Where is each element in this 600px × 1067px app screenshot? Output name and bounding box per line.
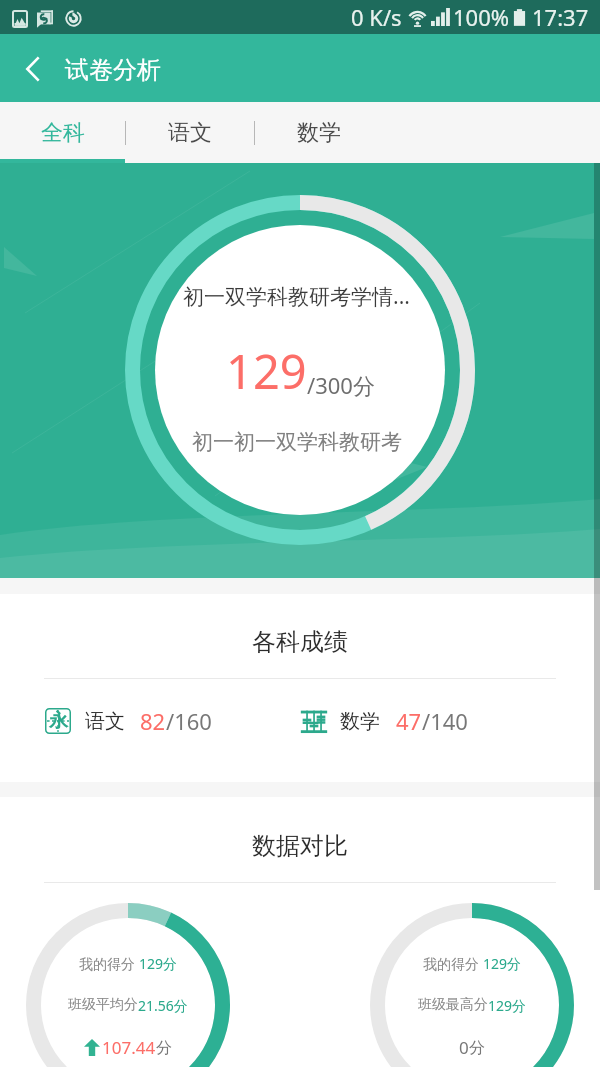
button[interactable]: Back (0, 34, 62, 102)
staticText: /140 (422, 706, 468, 736)
staticText: 82 (140, 706, 166, 736)
staticText: 129分 (483, 954, 522, 973)
staticText: /300分 (307, 370, 375, 400)
staticText: /160 (166, 706, 212, 736)
button[interactable]: 全科 (0, 102, 125, 163)
staticText: 试卷分析 (65, 55, 161, 85)
staticText: 数学 (297, 119, 341, 147)
staticText: 初一初一双学科教研考 (192, 429, 402, 455)
staticText: 初一双学科教研考学情... (183, 282, 410, 311)
staticText: 47 (396, 706, 422, 736)
staticText: 0 K/s (351, 2, 402, 32)
staticText: 0 (459, 1036, 469, 1059)
staticText: 分 (156, 1038, 172, 1058)
staticText: 班级最高分 (418, 996, 488, 1014)
staticText: 永 (49, 709, 68, 733)
staticText: 数据对比 (252, 831, 348, 861)
staticText: 129分 (139, 954, 178, 973)
staticText: 我的得分 (79, 954, 139, 973)
staticText: 17:37 (532, 2, 589, 32)
staticText: 全科 (41, 119, 85, 147)
staticText: 数学 (340, 709, 380, 734)
staticText: 21.56分 (138, 996, 188, 1015)
staticText: 107.44 (102, 1036, 156, 1059)
staticText: 班级平均分 (68, 996, 138, 1014)
staticText: 分 (469, 1038, 485, 1058)
button[interactable]: 语文 (125, 102, 254, 163)
staticText: 各科成绩 (252, 627, 348, 657)
staticText: 我的得分 (423, 954, 483, 973)
button[interactable]: 数学 (300, 697, 555, 745)
button[interactable]: 永 (45, 697, 300, 745)
staticText: 语文 (168, 119, 212, 147)
staticText: 100% (453, 2, 510, 32)
button[interactable]: 数学 (254, 102, 383, 163)
staticText: 129分 (488, 996, 527, 1015)
staticText: 129 (226, 339, 307, 403)
staticText: 语文 (85, 709, 125, 734)
